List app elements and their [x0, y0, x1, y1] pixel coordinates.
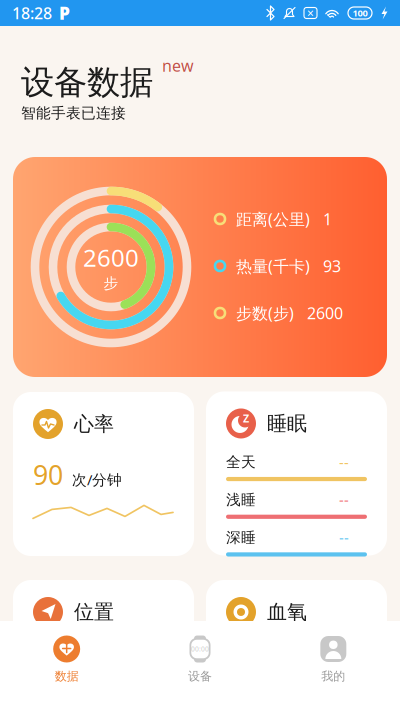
staticText: 热量(千卡): [236, 255, 310, 277]
staticText: 深睡: [226, 529, 256, 547]
staticText: 步: [103, 274, 118, 292]
staticText: --: [339, 528, 349, 547]
staticText: 00:00: [191, 645, 209, 653]
staticText: 我的: [321, 669, 345, 684]
staticText: 智能手表已连接: [21, 104, 126, 122]
staticText: Z: [243, 411, 249, 426]
staticText: 18:28: [12, 2, 52, 24]
staticText: 浅睡: [226, 491, 256, 509]
staticText: 90: [33, 457, 63, 492]
button[interactable]: 数据: [0, 621, 133, 711]
staticText: 设备: [188, 669, 212, 684]
staticText: 血氧: [267, 600, 307, 624]
staticText: 次/分钟: [72, 470, 122, 489]
button[interactable]: 位置: [13, 580, 194, 711]
staticText: --: [339, 490, 349, 510]
button[interactable]: 心率: [13, 392, 194, 556]
button[interactable]: 血氧: [206, 580, 387, 711]
staticText: 数据: [55, 669, 79, 684]
staticText: new: [162, 55, 194, 76]
staticText: 1: [323, 208, 332, 230]
button[interactable]: 00:00: [133, 621, 267, 711]
staticText: 2600: [307, 302, 343, 324]
staticText: 2600: [83, 242, 139, 273]
staticText: 睡眠: [267, 411, 307, 436]
button[interactable]: 我的: [267, 621, 400, 711]
staticText: 93: [323, 255, 341, 277]
staticText: 步数(步): [236, 302, 294, 324]
staticText: 心率: [74, 412, 114, 436]
button[interactable]: Z: [206, 391, 387, 556]
staticText: P: [59, 1, 70, 24]
staticText: 100: [352, 7, 367, 19]
staticText: 位置: [74, 600, 114, 624]
staticText: 全天: [226, 453, 256, 471]
staticText: 距离(公里): [236, 208, 310, 230]
staticText: ×: [307, 5, 314, 21]
staticText: 设备数据: [21, 62, 153, 103]
staticText: --: [339, 452, 349, 472]
